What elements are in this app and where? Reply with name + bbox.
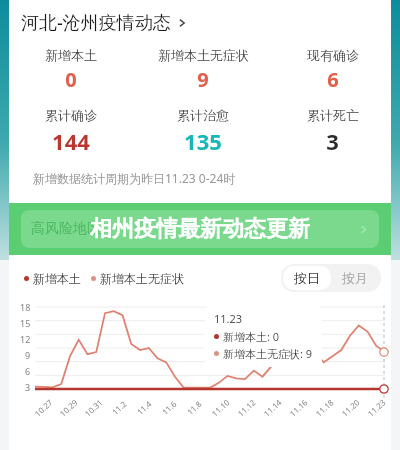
staticText: 11.18 xyxy=(313,396,336,419)
staticText: 11.14 xyxy=(261,396,284,419)
staticText: 10.27 xyxy=(32,396,55,419)
button[interactable]: 现有确诊 xyxy=(274,47,391,93)
staticText: 新增本土无症状 xyxy=(158,47,249,63)
staticText: 6 xyxy=(327,66,339,93)
button[interactable]: 按月 xyxy=(342,270,368,286)
staticText: 按月 xyxy=(342,270,368,286)
staticText: 新增本土: 0 xyxy=(223,329,280,344)
staticText: 135 xyxy=(184,126,222,156)
staticText: 3 xyxy=(25,381,31,393)
staticText: 11.8 xyxy=(184,398,204,417)
staticText: 11.16 xyxy=(287,396,310,419)
staticText: 11.12 xyxy=(235,396,258,419)
staticText: 现有确诊 xyxy=(307,47,359,63)
staticText: 高风险地区 xyxy=(31,220,101,238)
staticText: 新增本土 xyxy=(45,47,97,63)
staticText: 11.23 xyxy=(214,311,243,326)
staticText: 9 xyxy=(197,66,209,93)
staticText: 10.29 xyxy=(57,396,80,419)
button[interactable]: 新增本土无症状 xyxy=(132,47,274,93)
button[interactable]: 累计确诊 xyxy=(9,107,132,156)
button[interactable]: 新增本土 xyxy=(9,47,132,93)
staticText: 15 xyxy=(20,317,31,329)
staticText: 11.20 xyxy=(339,396,362,419)
staticText: 新增本土 xyxy=(33,271,81,286)
staticText: 6 xyxy=(25,365,31,377)
staticText: 累计治愈 xyxy=(177,107,229,123)
staticText: 累计确诊 xyxy=(45,107,97,123)
staticText: 按日 xyxy=(294,270,320,286)
staticText: 3 xyxy=(326,126,339,156)
staticText: 0 xyxy=(65,66,77,93)
staticText: 累计死亡 xyxy=(307,107,359,123)
staticText: 11.23 xyxy=(365,396,388,419)
other: Tooltip 11.23 xyxy=(214,311,313,361)
button[interactable]: 新增本土 xyxy=(24,271,81,286)
staticText: 10.31 xyxy=(82,396,105,419)
staticText: 河北-沧州疫情动态 xyxy=(21,10,171,35)
button[interactable]: 高风险地区 xyxy=(21,210,379,248)
staticText: 9 xyxy=(25,349,31,361)
staticText: 相州疫情最新动态更新 xyxy=(90,215,310,243)
button[interactable]: 累计死亡 xyxy=(274,107,391,156)
button[interactable]: 新增本土无症状 xyxy=(91,271,184,286)
staticText: 新增本土无症状: 9 xyxy=(223,346,313,361)
staticText: 144 xyxy=(52,126,90,156)
staticText: 11.6 xyxy=(159,398,179,417)
staticText: 12 xyxy=(20,333,31,345)
staticText: 新增本土无症状 xyxy=(100,271,184,286)
button[interactable]: 按日 xyxy=(294,270,320,286)
staticText: 18 xyxy=(20,301,31,313)
staticText: 11.2 xyxy=(109,398,129,417)
button[interactable]: 累计治愈 xyxy=(132,107,274,156)
staticText: 11.4 xyxy=(134,398,154,417)
staticText: 11.10 xyxy=(209,396,232,419)
button[interactable]: 河北-沧州疫情动态 xyxy=(21,10,391,35)
staticText: 新增数据统计周期为昨日11.23 0-24时 xyxy=(33,170,236,186)
